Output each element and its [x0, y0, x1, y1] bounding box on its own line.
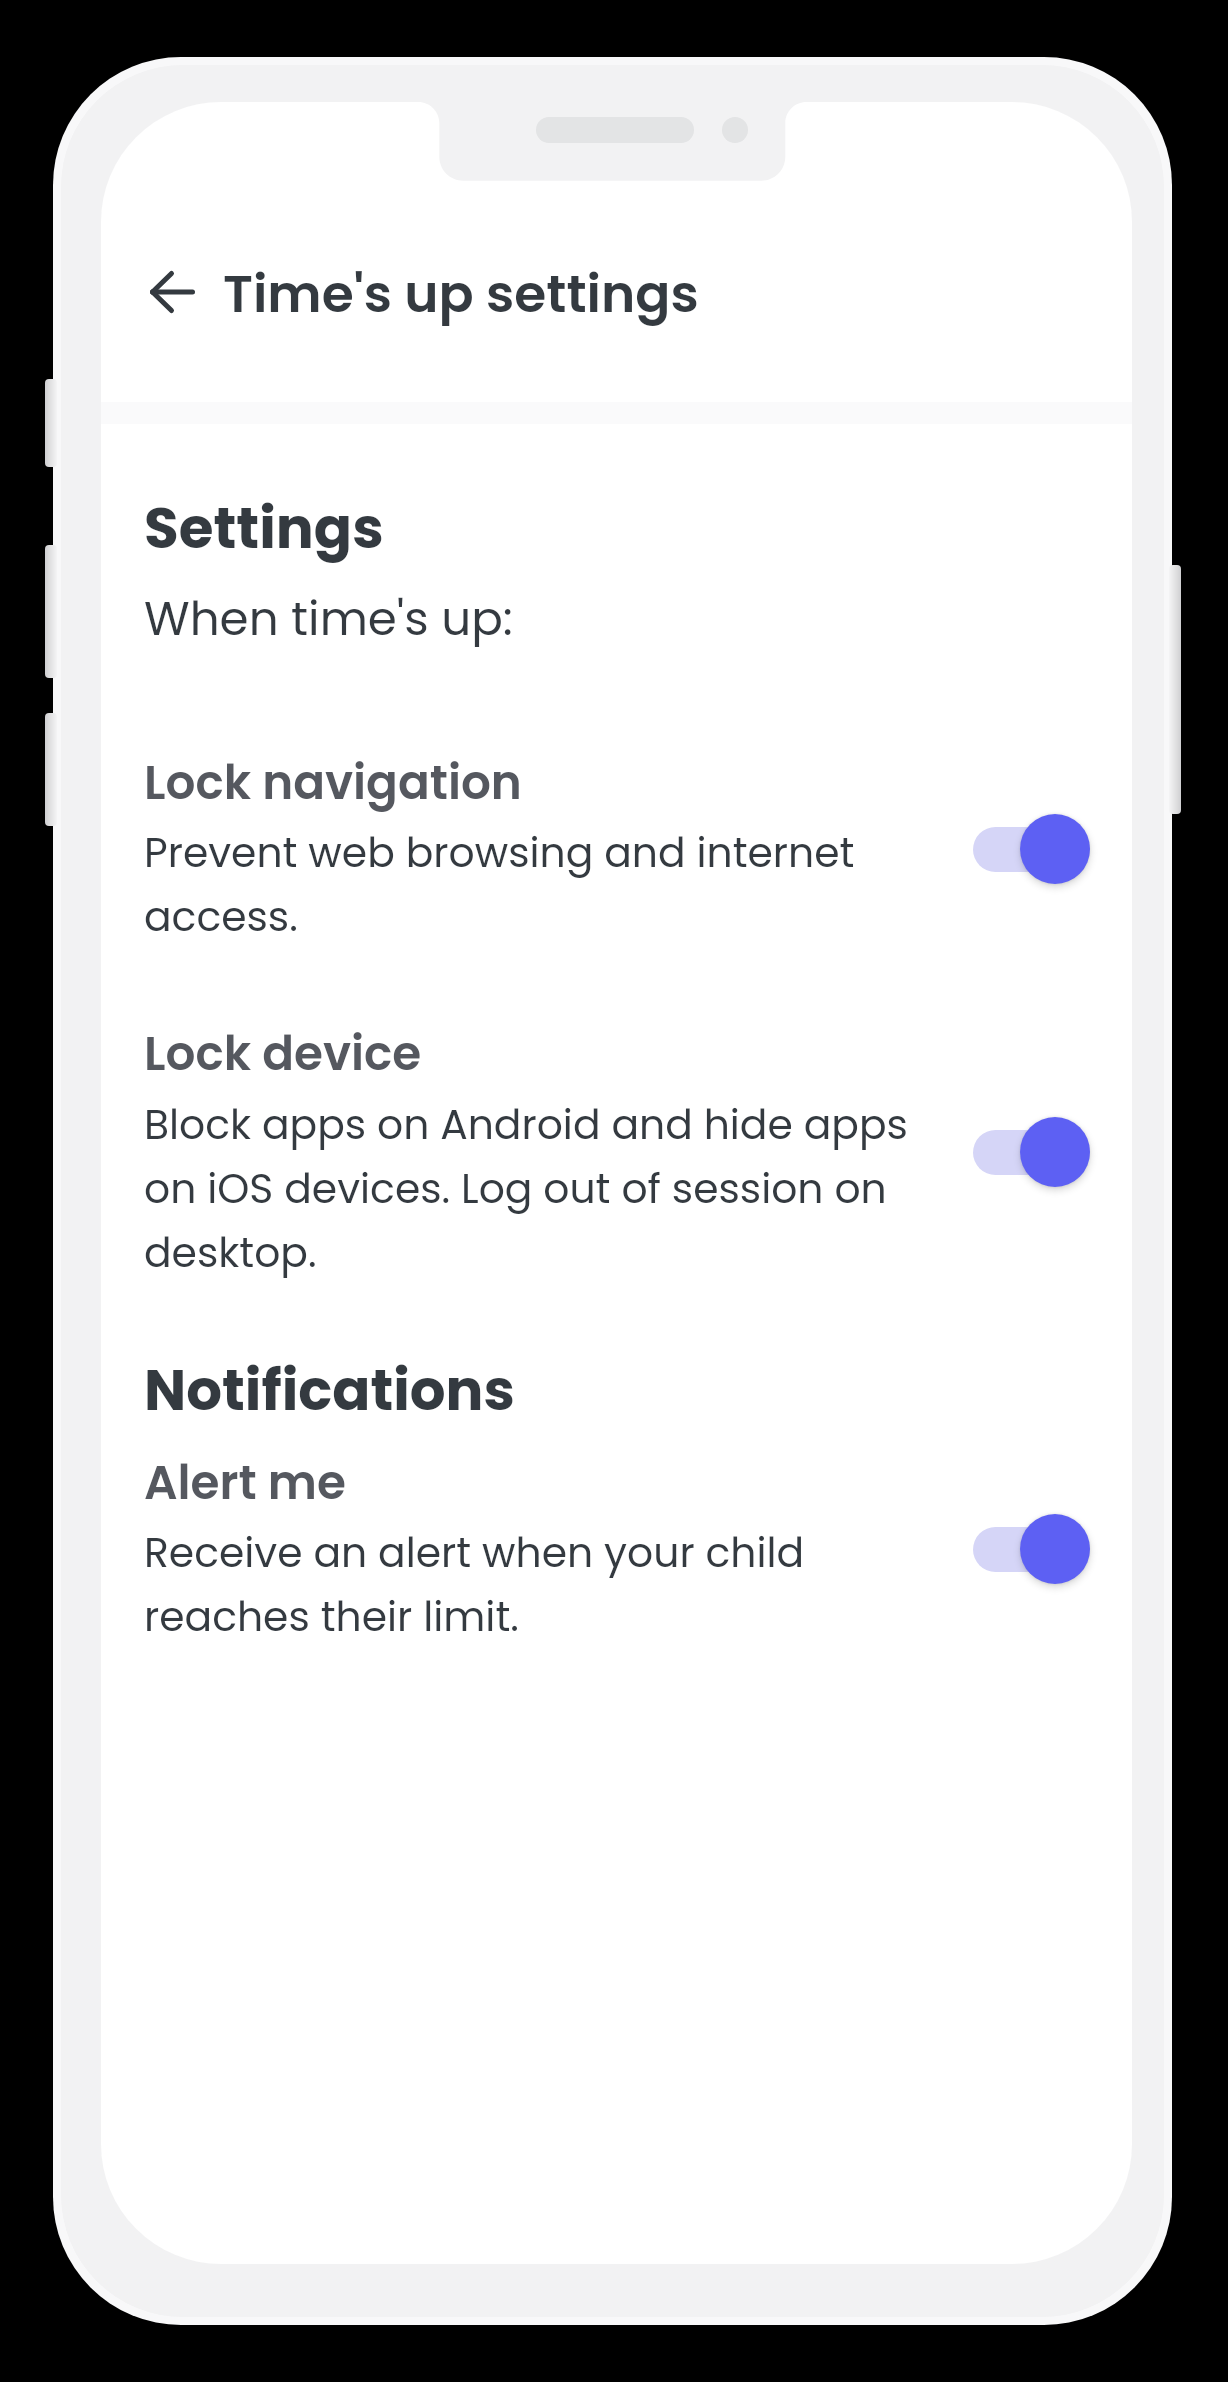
staticText: Settings — [144, 489, 384, 568]
button[interactable]: Lock device — [101, 1011, 1132, 1293]
staticText: Receive an alert when your child reaches… — [144, 1524, 939, 1646]
staticText: Block apps on Android and hide apps on i… — [144, 1096, 939, 1282]
button[interactable]: Toggle Lock device — [973, 1115, 1090, 1189]
staticText: Notifications — [144, 1351, 515, 1430]
button[interactable]: Back — [142, 261, 203, 322]
staticText: Time's up settings — [223, 258, 699, 331]
button[interactable]: Alert me — [101, 1440, 1132, 1657]
button[interactable]: Toggle Alert me — [973, 1512, 1090, 1586]
staticText: Alert me — [144, 1450, 346, 1516]
staticText: Lock device — [144, 1021, 422, 1087]
staticText: Lock navigation — [144, 750, 522, 816]
button[interactable]: Lock navigation — [101, 739, 1132, 957]
button[interactable]: Time's up settings — [144, 258, 620, 331]
staticText: When time's up: — [144, 586, 513, 652]
staticText: Prevent web browsing and internet access… — [144, 824, 939, 946]
button[interactable]: Toggle Lock navigation — [973, 812, 1090, 886]
